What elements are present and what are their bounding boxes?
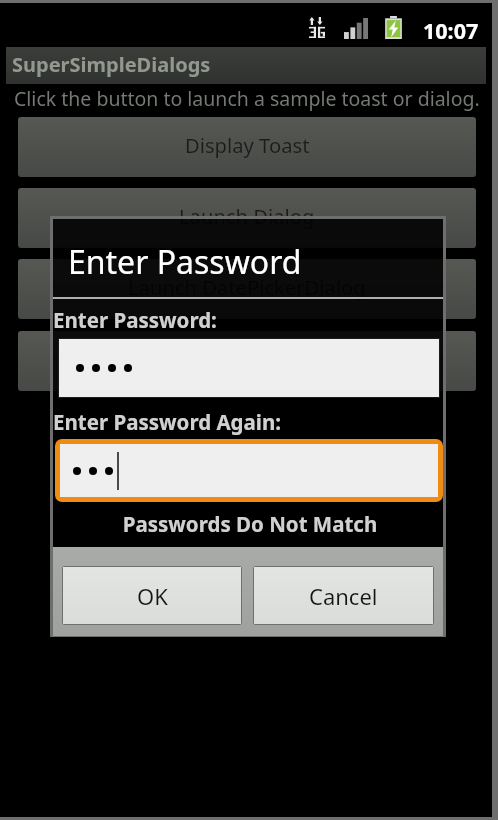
staticText: Click the button to launch a sample toas… (14, 85, 480, 112)
button[interactable] (60, 444, 438, 497)
other: 3G data (309, 17, 325, 38)
staticText: Display Toast (185, 131, 310, 159)
button[interactable]: Display Toast (18, 117, 476, 177)
staticText: Cancel (309, 581, 378, 611)
button[interactable]: Launch TimePickerDialog (18, 331, 476, 391)
staticText: Launch DatePickerDialog (128, 273, 366, 301)
staticText: Launch Dialog (179, 202, 315, 230)
staticText: Enter Password: (53, 306, 217, 334)
staticText: OK (137, 581, 168, 611)
other: Battery charging (384, 16, 403, 39)
button[interactable]: Launch Dialog (18, 188, 476, 248)
staticText: Launch TimePickerDialog (127, 345, 367, 373)
button[interactable]: OK (63, 567, 241, 624)
button[interactable] (59, 339, 439, 397)
staticText: Passwords Do Not Match (55, 510, 445, 538)
staticText: Enter Password (68, 240, 302, 284)
other: Signal strength (344, 18, 368, 39)
button[interactable]: Cancel (254, 567, 433, 624)
button[interactable]: Launch DatePickerDialog (18, 259, 476, 319)
staticText: Enter Password Again: (53, 408, 282, 436)
staticText: 10:07 (423, 16, 479, 45)
staticText: SuperSimpleDialogs (12, 51, 211, 78)
